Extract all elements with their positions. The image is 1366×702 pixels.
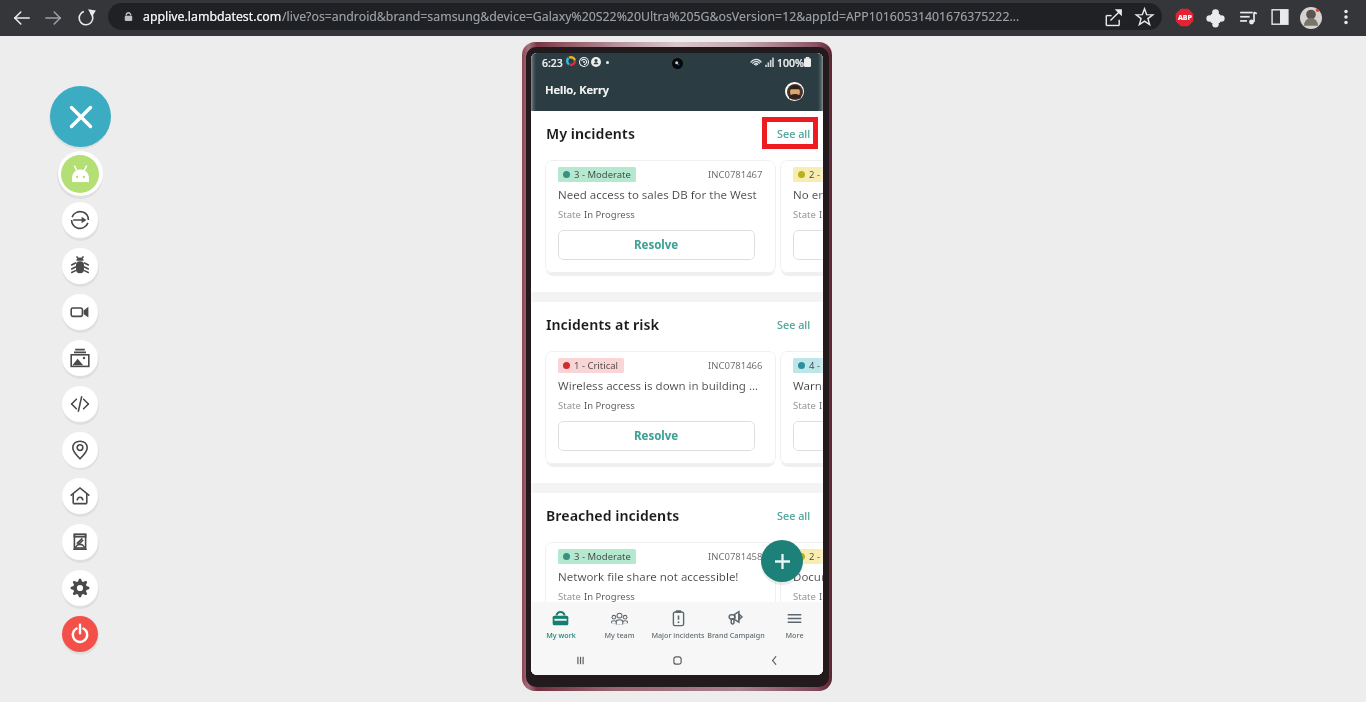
staticText: Breached incidents <box>546 506 680 525</box>
button[interactable]: Close <box>50 86 111 147</box>
staticText: /live?os=android&brand=samsung&device=Ga… <box>282 8 1020 25</box>
staticText: Incidents at risk <box>546 315 660 334</box>
button[interactable]: Resolve <box>793 421 823 451</box>
staticText: My work <box>546 630 576 640</box>
button[interactable]: Major incidents <box>649 602 707 646</box>
staticText: See all <box>777 317 811 332</box>
button[interactable]: Switch device <box>62 202 98 238</box>
staticText: My team <box>604 630 635 640</box>
staticText: Network file share not accessible! <box>558 569 739 585</box>
button[interactable]: Media controls <box>1239 8 1258 27</box>
staticText: State <box>793 208 819 221</box>
staticText: Brand Campaign <box>707 630 765 640</box>
button[interactable]: Power <box>62 616 98 652</box>
button[interactable]: My team <box>590 602 649 646</box>
button[interactable]: AdBlock Plus <box>1175 8 1194 27</box>
staticText: Need access to sales DB for the West <box>558 187 757 203</box>
button[interactable]: Android device <box>61 155 99 193</box>
button[interactable]: Report bug <box>62 248 98 284</box>
staticText: No email <box>793 187 823 203</box>
staticText: Wireless access is down in building ... <box>558 378 759 394</box>
button[interactable]: Extensions <box>1206 8 1225 27</box>
staticText: 2 - High <box>809 168 823 181</box>
staticText: 1 - Critical <box>574 359 619 372</box>
button[interactable]: Screenshot <box>62 340 98 376</box>
button[interactable]: Settings <box>62 570 98 606</box>
button[interactable]: Breached incidents <box>546 506 680 525</box>
staticText: 4 - Low <box>809 359 823 372</box>
staticText: See all <box>777 508 811 523</box>
button[interactable]: See all <box>777 317 811 332</box>
button[interactable]: Back <box>12 8 32 28</box>
staticText: Hello, Kerry <box>545 82 609 97</box>
button[interactable]: Developer tools <box>62 386 98 422</box>
button[interactable]: 1 - Critical <box>545 351 776 464</box>
staticText: INC0781466 <box>708 359 763 372</box>
button[interactable]: Resolve <box>793 230 823 260</box>
staticText: applive.lambdatest.com <box>143 8 282 25</box>
staticText: Document <box>793 569 823 585</box>
staticText: ABP <box>1178 13 1192 23</box>
button[interactable]: applive.lambdatest.com <box>108 3 1162 30</box>
button[interactable]: Resolve <box>793 612 823 642</box>
staticText: Resolve <box>634 428 679 444</box>
button[interactable]: Profile <box>785 82 804 101</box>
staticText: INC0781467 <box>708 168 763 181</box>
button[interactable]: Resolve <box>558 230 755 260</box>
button[interactable]: 2 - High <box>780 160 823 273</box>
button[interactable]: Create incident <box>761 540 803 582</box>
staticText: In Progress <box>584 590 635 603</box>
button[interactable]: 2 - High <box>780 542 823 655</box>
button[interactable]: Recent apps <box>531 646 629 675</box>
staticText: Resolve <box>634 237 679 253</box>
button[interactable]: Resolve <box>558 421 755 451</box>
button[interactable]: Reload <box>76 8 96 28</box>
button[interactable]: My work <box>531 602 590 646</box>
button[interactable]: Record video <box>62 294 98 330</box>
staticText: State <box>558 399 584 412</box>
button[interactable]: Back <box>726 646 823 675</box>
staticText: 100% <box>777 56 804 70</box>
button[interactable]: Report <box>62 524 98 560</box>
button[interactable]: Side panel <box>1271 8 1289 26</box>
staticText: Resolve <box>634 619 679 635</box>
staticText: See all <box>777 126 811 141</box>
button[interactable]: Resolve <box>558 612 755 642</box>
staticText: 3 - Moderate <box>574 168 631 181</box>
button[interactable]: Bookmark <box>1135 8 1154 27</box>
staticText: State <box>558 590 584 603</box>
button[interactable]: 3 - Moderate <box>545 542 776 655</box>
button[interactable]: My incidents <box>546 124 635 143</box>
staticText: Major incidents <box>651 630 705 640</box>
button[interactable]: See all <box>777 126 811 141</box>
staticText: Warning <box>793 378 823 394</box>
button[interactable]: Set location <box>62 432 98 468</box>
button[interactable]: Incidents at risk <box>546 315 660 334</box>
button[interactable]: Share <box>1104 8 1123 27</box>
button[interactable]: 3 - Moderate <box>545 160 776 273</box>
staticText: 3 - Moderate <box>574 550 631 563</box>
staticText: State <box>793 399 819 412</box>
staticText: In Progress <box>584 208 635 221</box>
button[interactable]: More <box>765 602 823 646</box>
staticText: State <box>558 208 584 221</box>
staticText: My incidents <box>546 124 635 143</box>
button[interactable]: Profile <box>1300 7 1322 29</box>
button[interactable]: Brand Campaign <box>707 602 765 646</box>
staticText: In Progress <box>584 399 635 412</box>
staticText: In Progress <box>819 208 823 221</box>
staticText: In Progress <box>819 399 823 412</box>
button[interactable]: More options <box>1338 9 1354 25</box>
button[interactable]: Home <box>629 646 726 675</box>
button[interactable]: 4 - Low <box>780 351 823 464</box>
button[interactable]: Forward <box>43 8 63 28</box>
button[interactable]: See all <box>777 508 811 523</box>
staticText: More <box>785 630 804 640</box>
button[interactable]: Home <box>62 478 98 514</box>
staticText: INC0781458 <box>708 550 763 563</box>
staticText: State <box>793 590 819 603</box>
staticText: 6:23 <box>542 56 563 70</box>
staticText: In Progress <box>819 590 823 603</box>
staticText: 2 - High <box>809 550 823 563</box>
